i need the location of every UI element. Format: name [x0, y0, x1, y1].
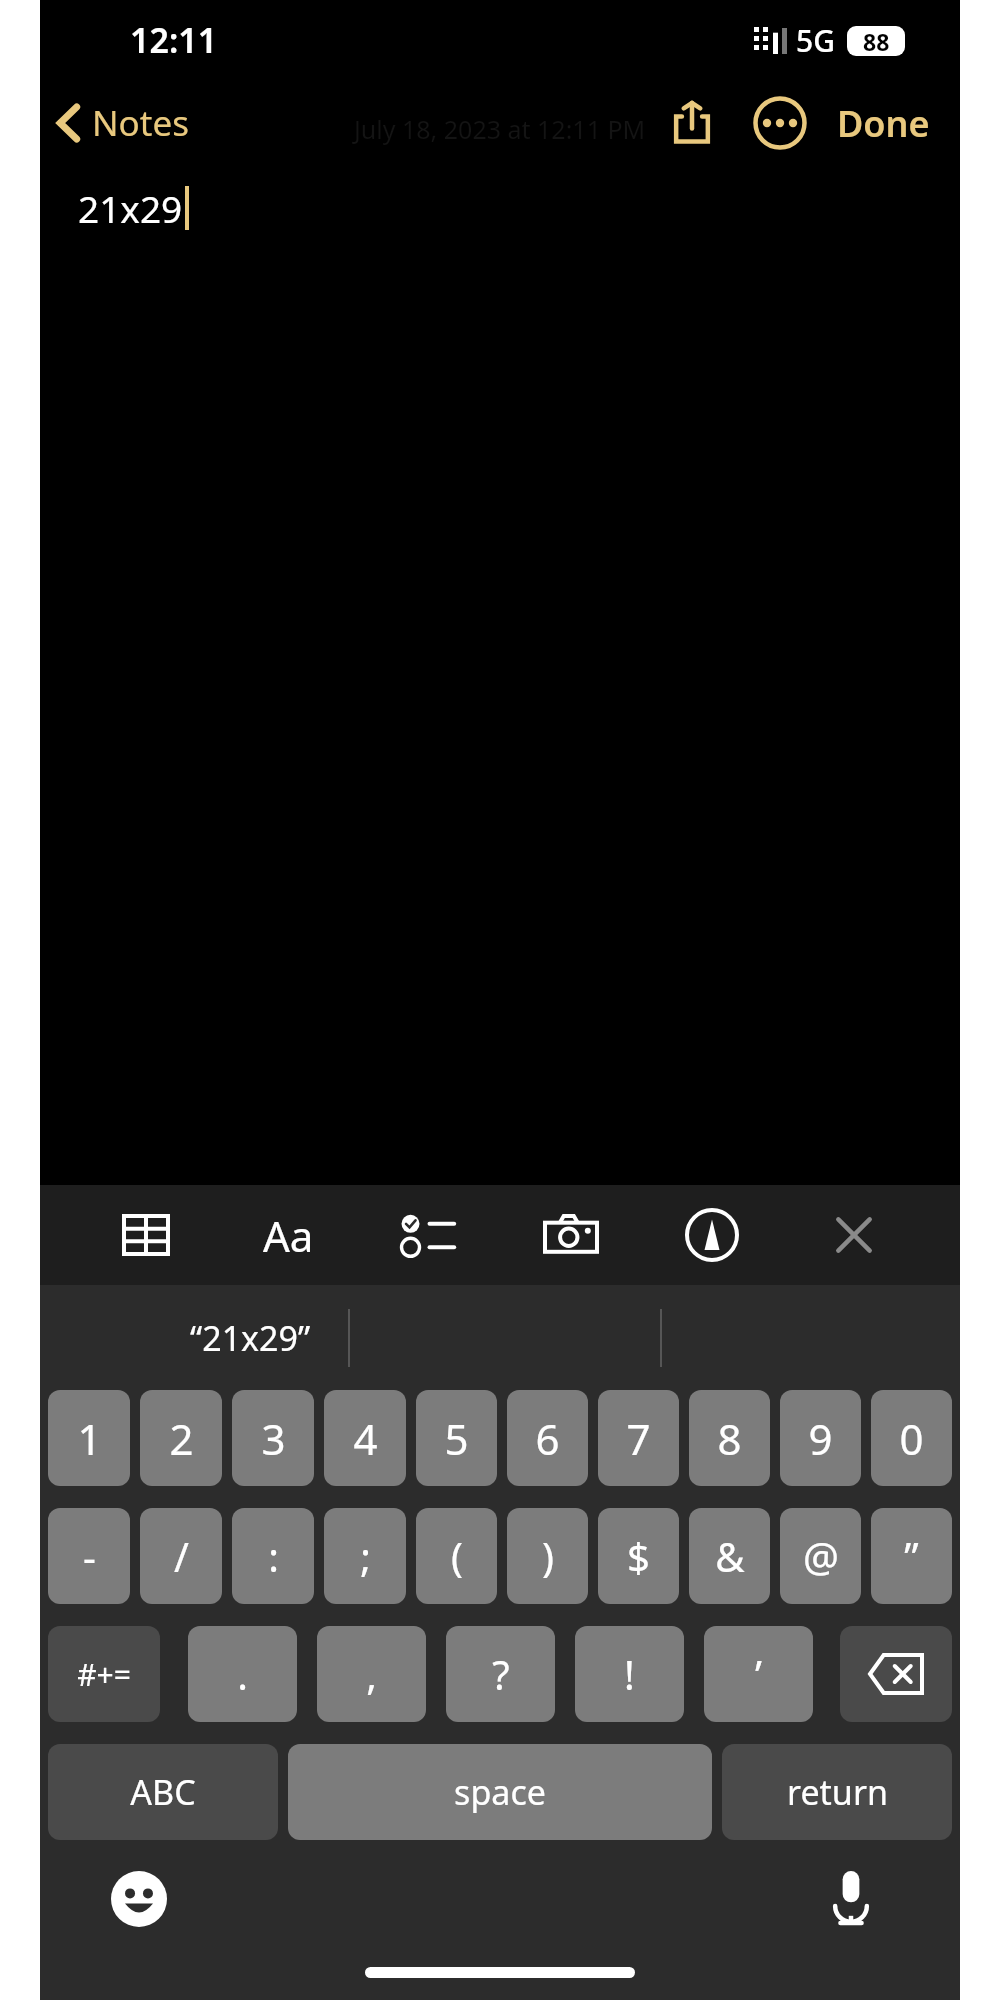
staticText: 2 — [169, 1410, 194, 1467]
staticText: 6 — [535, 1410, 560, 1467]
button[interactable]: Close — [826, 1207, 882, 1263]
staticText: 12:11 — [130, 17, 218, 63]
button[interactable]: 9 — [780, 1390, 861, 1486]
button[interactable]: 2 — [140, 1390, 222, 1486]
button[interactable]: More options — [743, 86, 817, 160]
staticText: / — [174, 1529, 189, 1583]
staticText: 5 — [444, 1410, 469, 1467]
button[interactable]: 0 — [871, 1390, 952, 1486]
staticText: 3 — [261, 1410, 286, 1467]
staticText: ABC — [130, 1769, 196, 1815]
button[interactable]: . — [188, 1626, 297, 1722]
button[interactable]: Markup — [684, 1207, 740, 1263]
button[interactable]: : — [232, 1508, 314, 1604]
button[interactable]: 4 — [324, 1390, 406, 1486]
button[interactable]: ! — [575, 1626, 684, 1722]
staticText: space — [454, 1769, 546, 1815]
button[interactable]: Table — [118, 1207, 174, 1263]
button[interactable]: ) — [507, 1508, 588, 1604]
button[interactable]: Backspace — [840, 1626, 952, 1722]
staticText: & — [715, 1529, 745, 1583]
staticText: ; — [360, 1529, 371, 1583]
button[interactable]: ; — [324, 1508, 406, 1604]
button[interactable]: ’ — [704, 1626, 813, 1722]
staticText: 21x29 — [78, 183, 183, 233]
button[interactable]: Done — [827, 91, 940, 156]
staticText: ? — [492, 1647, 510, 1701]
button[interactable]: ABC — [48, 1744, 278, 1840]
staticText: return — [787, 1769, 888, 1815]
button[interactable]: ( — [416, 1508, 497, 1604]
button[interactable]: 6 — [507, 1390, 588, 1486]
button[interactable]: #+= — [48, 1626, 160, 1722]
staticText: 5G — [796, 20, 835, 61]
staticText: 0 — [899, 1410, 924, 1467]
button[interactable]: Share — [655, 86, 729, 160]
staticText: 1 — [77, 1410, 102, 1467]
button[interactable]: / — [140, 1508, 222, 1604]
button[interactable]: & — [689, 1508, 770, 1604]
staticText: Notes — [92, 99, 189, 147]
staticText: 7 — [626, 1410, 651, 1467]
staticText: ) — [542, 1529, 554, 1583]
staticText: ” — [904, 1529, 919, 1583]
staticText: #+= — [77, 1654, 131, 1695]
button[interactable]: space — [288, 1744, 712, 1840]
button[interactable]: 3 — [232, 1390, 314, 1486]
staticText: ’ — [755, 1647, 762, 1701]
staticText: , — [366, 1647, 377, 1701]
button[interactable]: 8 — [689, 1390, 770, 1486]
staticText: July 18, 2023 at 12:11 PM — [354, 112, 646, 146]
staticText: 8 — [717, 1410, 742, 1467]
staticText: 9 — [808, 1410, 833, 1467]
staticText: Aa — [263, 1207, 314, 1263]
button[interactable]: 5 — [416, 1390, 497, 1486]
button[interactable]: - — [48, 1508, 130, 1604]
button[interactable]: Camera — [543, 1207, 599, 1263]
button[interactable]: Emoji — [102, 1862, 176, 1936]
staticText: “21x29” — [190, 1315, 311, 1361]
button[interactable]: 1 — [48, 1390, 130, 1486]
staticText: 4 — [353, 1410, 378, 1467]
staticText: - — [83, 1529, 96, 1583]
button[interactable]: Checklist — [401, 1207, 457, 1263]
button[interactable]: Notes — [50, 93, 197, 153]
button[interactable]: ? — [446, 1626, 555, 1722]
staticText: ! — [624, 1647, 635, 1701]
button[interactable]: 7 — [598, 1390, 679, 1486]
staticText: $ — [627, 1529, 650, 1583]
button[interactable]: return — [722, 1744, 952, 1840]
staticText: @ — [803, 1529, 839, 1583]
button[interactable]: Text format — [260, 1207, 316, 1263]
button[interactable]: $ — [598, 1508, 679, 1604]
staticText: Done — [837, 99, 930, 148]
staticText: : — [268, 1529, 279, 1583]
staticText: . — [237, 1647, 248, 1701]
button[interactable]: Dictation — [814, 1862, 888, 1936]
button[interactable]: , — [317, 1626, 426, 1722]
staticText: 88 — [863, 26, 890, 56]
button[interactable]: @ — [780, 1508, 861, 1604]
button[interactable]: ” — [871, 1508, 952, 1604]
staticText: ( — [451, 1529, 463, 1583]
